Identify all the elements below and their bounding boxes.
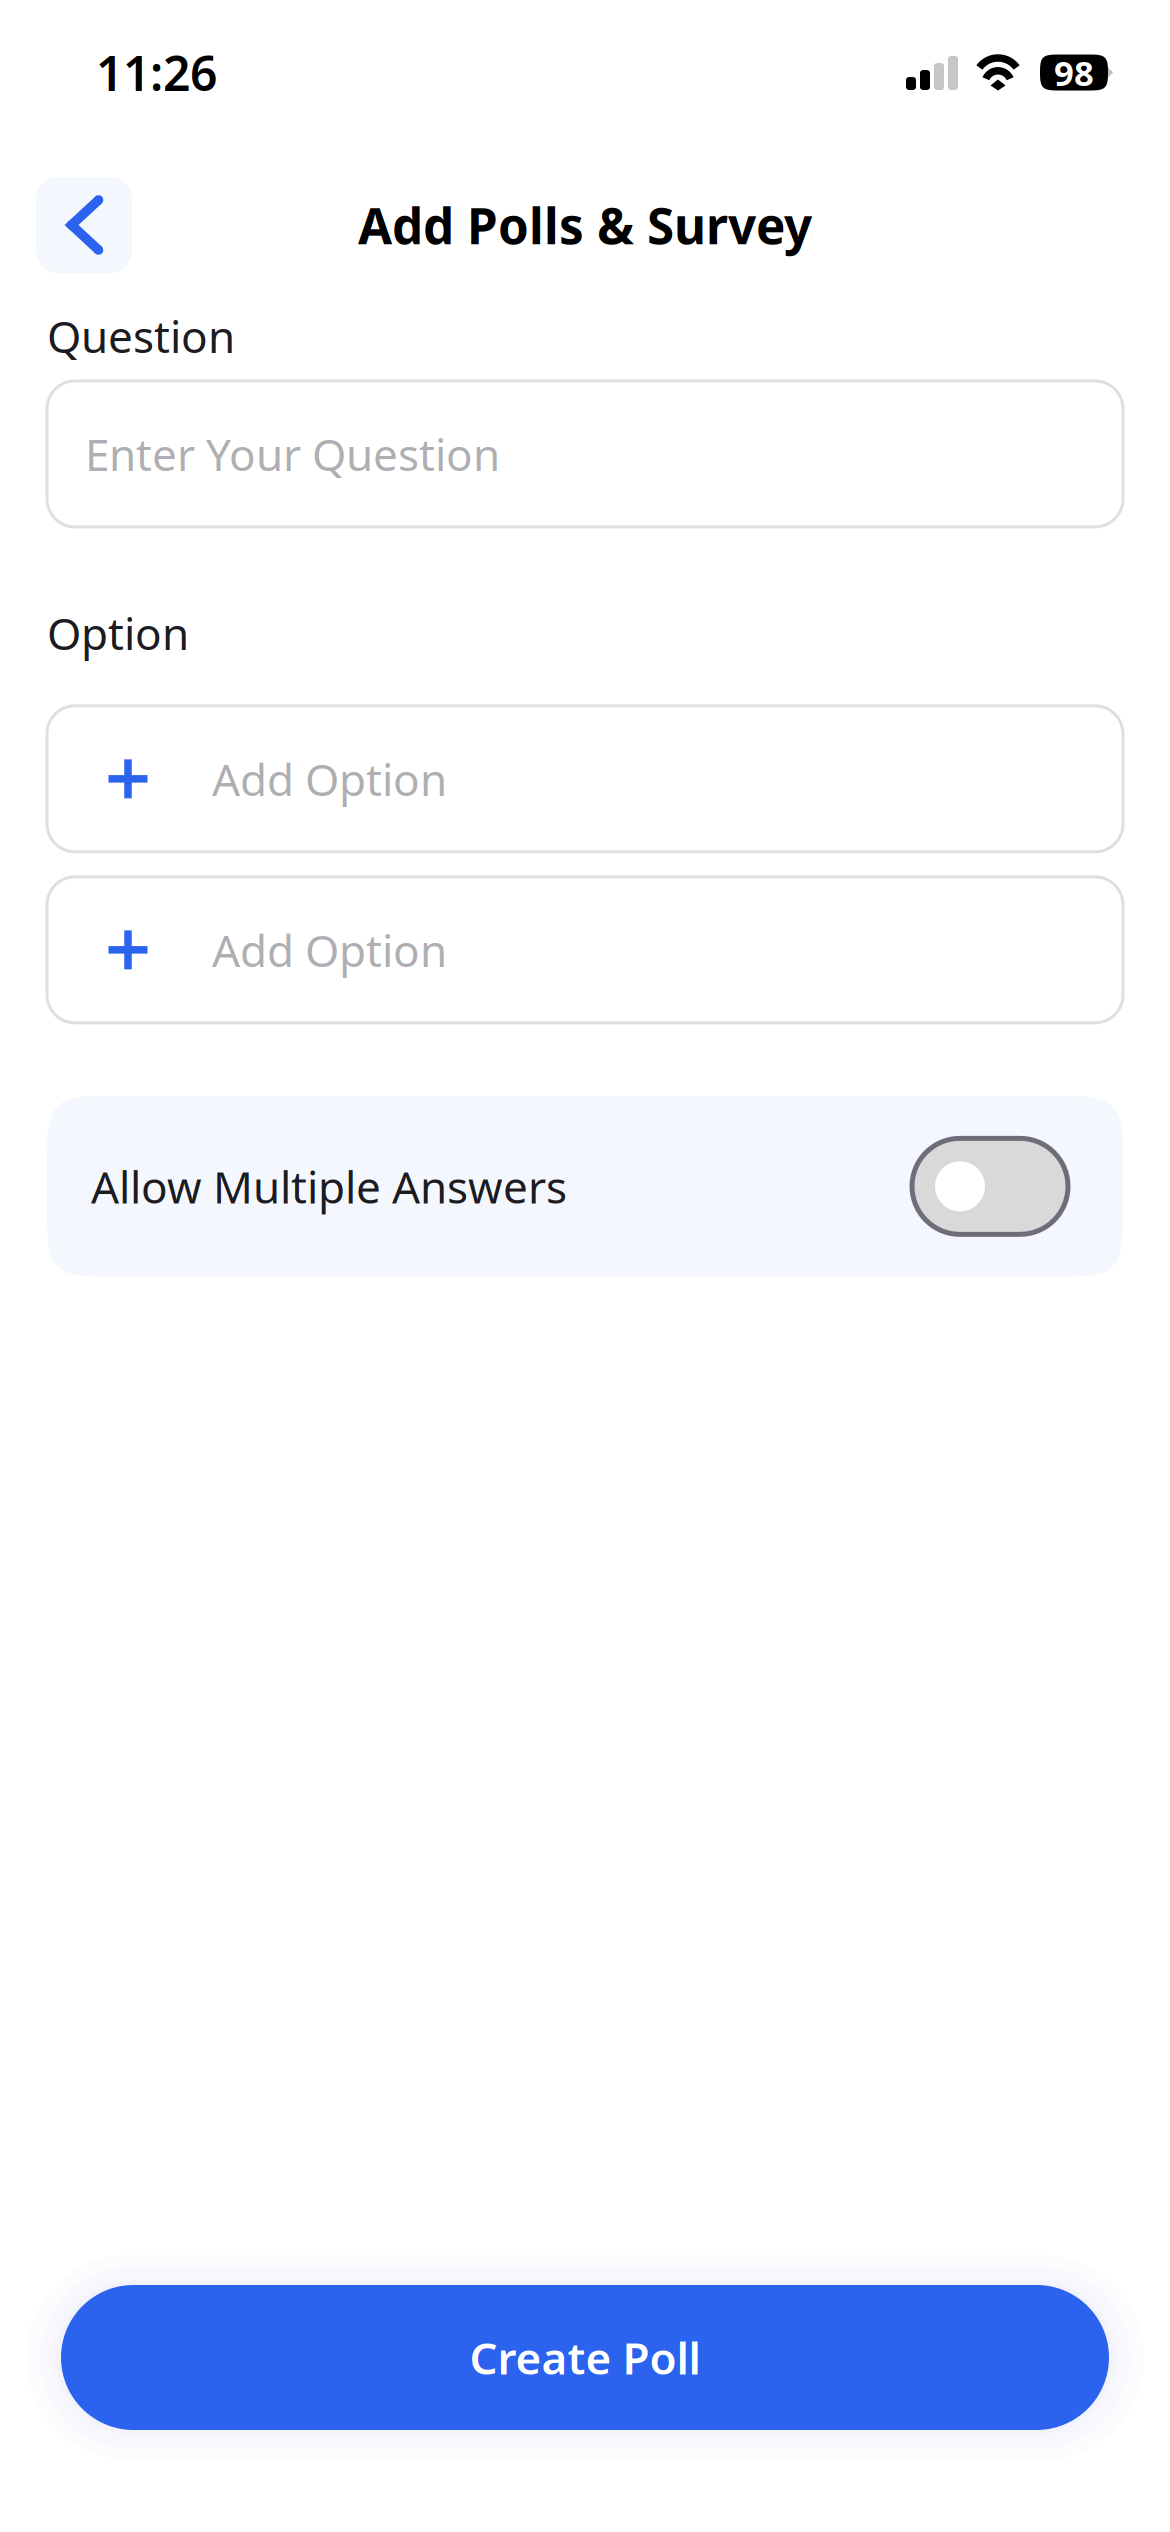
staticText: Add Option: [212, 920, 447, 980]
button[interactable]: Back: [36, 177, 132, 273]
staticText: Option: [47, 603, 189, 663]
button[interactable]: Add Option: [47, 706, 1123, 852]
staticText: Question: [47, 306, 235, 366]
staticText: Add Polls & Survey: [358, 191, 812, 259]
button[interactable]: Create Poll: [61, 2285, 1109, 2430]
button[interactable]: Enter Your Question: [47, 381, 1123, 527]
staticText: Create Poll: [469, 2327, 700, 2387]
staticText: Add Option: [212, 749, 447, 809]
staticText: Allow Multiple Answers: [91, 1156, 567, 1216]
staticText: 11:26: [96, 40, 217, 105]
button[interactable]: Allow Multiple Answers: [47, 1096, 1123, 1277]
button[interactable]: Add Option: [47, 877, 1123, 1023]
staticText: 98: [1054, 49, 1094, 96]
staticText: Enter Your Question: [85, 424, 500, 484]
